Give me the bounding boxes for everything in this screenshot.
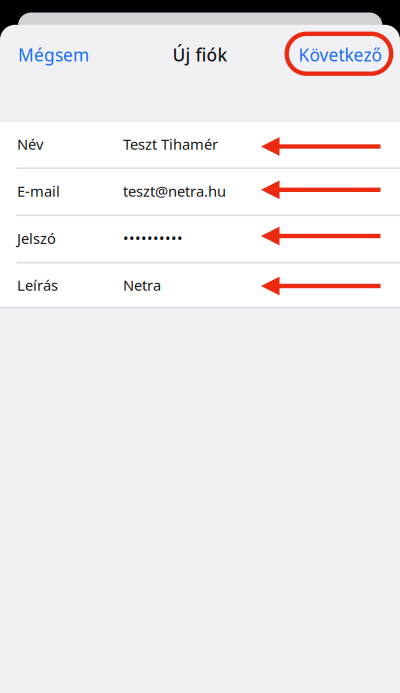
staticText: Jelszó [17,228,56,248]
button[interactable]: E-mail [0,167,400,215]
staticText: teszt@netra.hu [123,181,226,201]
staticText: •••••••••• [123,228,183,248]
button[interactable]: Leírás [0,262,400,308]
button[interactable]: Mégsem [16,36,91,73]
button[interactable]: Név [0,121,400,167]
staticText: Új fiók [172,43,227,66]
button[interactable]: Következő [296,36,383,73]
staticText: E-mail [17,181,60,201]
staticText: Név [17,134,43,154]
staticText: Netra [123,275,161,295]
staticText: Leírás [17,275,58,295]
staticText: Teszt Tihamér [123,134,218,154]
staticText: Mégsem [18,43,89,66]
button[interactable]: Jelszó [0,215,400,262]
staticText: Következő [298,43,381,66]
